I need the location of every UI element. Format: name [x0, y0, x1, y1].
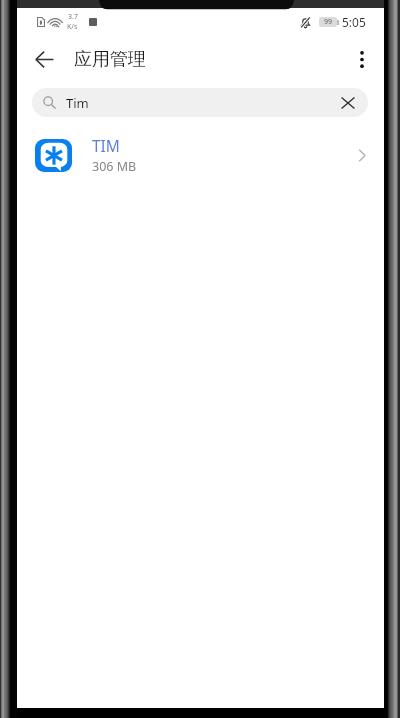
button[interactable]: Tim — [32, 88, 368, 117]
staticText: 应用管理 — [74, 48, 146, 71]
staticText: 306 MB — [92, 158, 137, 175]
staticText: TIM — [92, 135, 120, 156]
button[interactable]: TIM — [17, 128, 384, 182]
staticText: 99 — [324, 17, 333, 27]
button[interactable]: Clear — [335, 90, 361, 116]
button[interactable]: Back — [24, 39, 64, 79]
staticText: 5:05 — [342, 14, 366, 30]
staticText: 3.7 — [68, 12, 78, 22]
staticText: Tim — [66, 94, 89, 112]
staticText: K/s — [67, 22, 78, 32]
button[interactable]: More options — [342, 39, 382, 79]
